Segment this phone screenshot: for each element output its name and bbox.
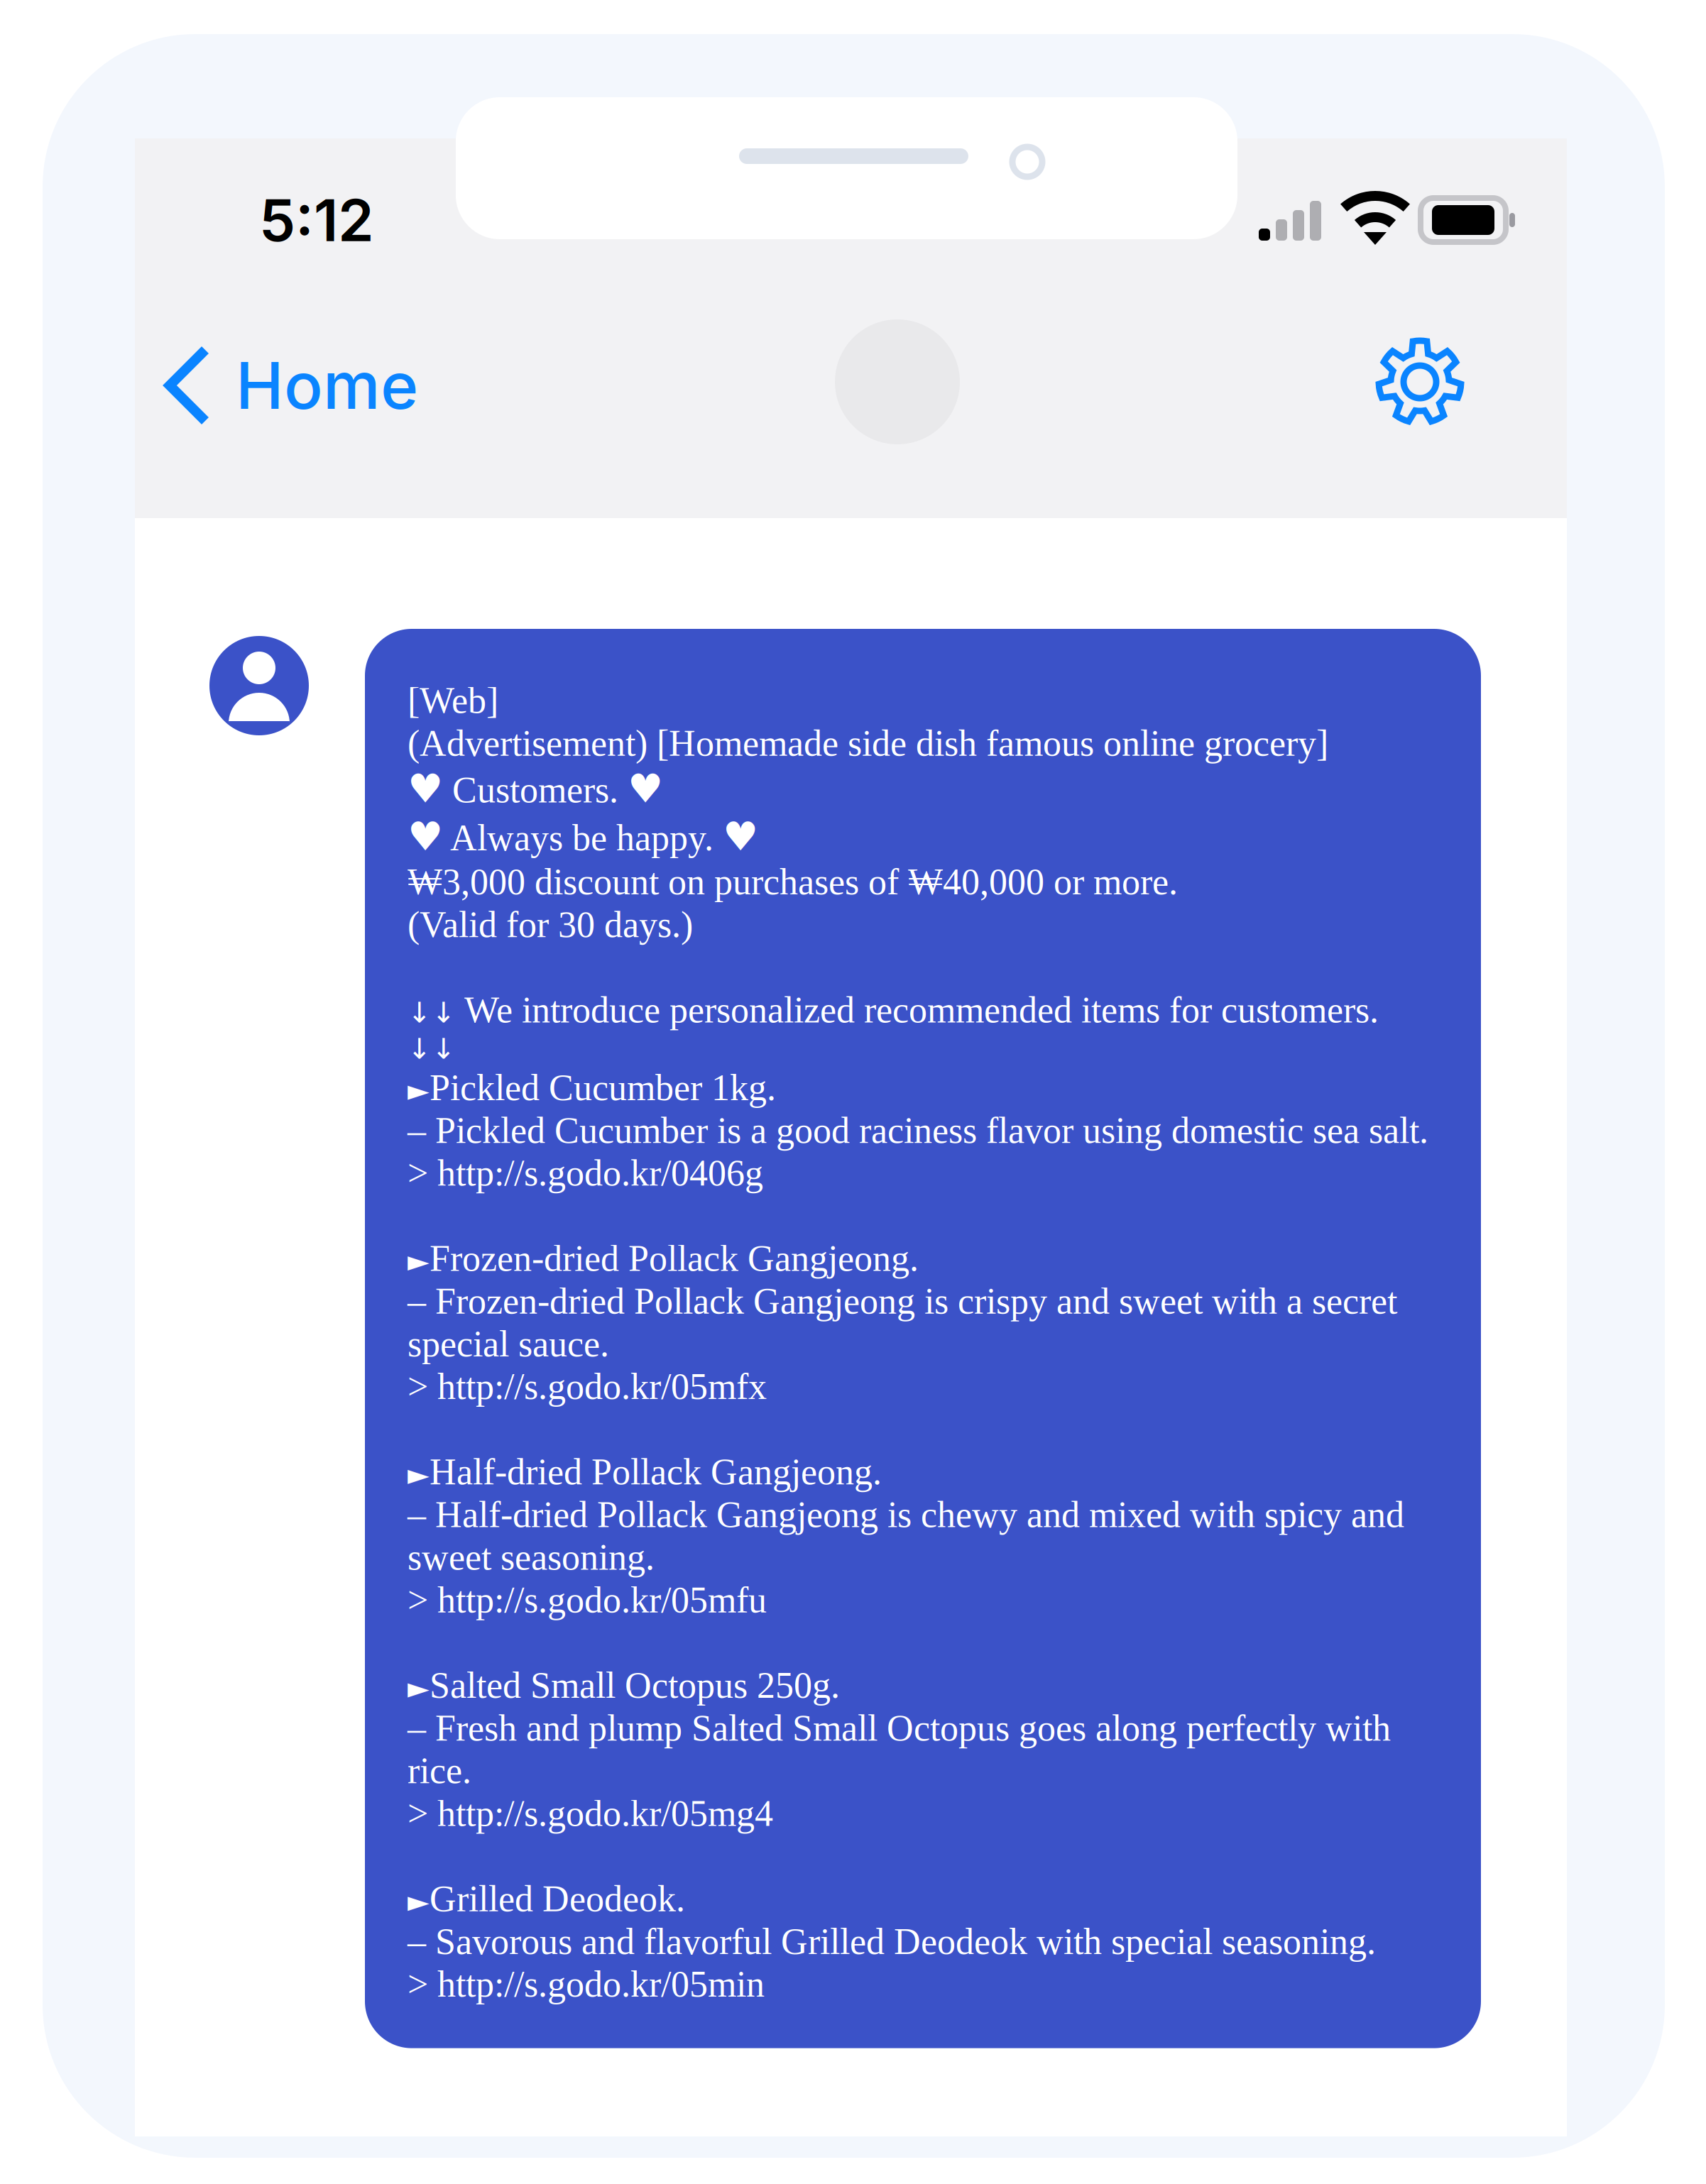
button[interactable]: [Web] (Advertisement) [Homemade side dis… [365,629,1481,2048]
staticText: Home [236,346,418,424]
staticText: 5:12 [259,185,374,255]
button[interactable]: Settings [1352,319,1495,444]
staticText: [Web] (Advertisement) [Homemade side dis… [408,681,1428,2004]
button[interactable]: Home [135,323,437,448]
